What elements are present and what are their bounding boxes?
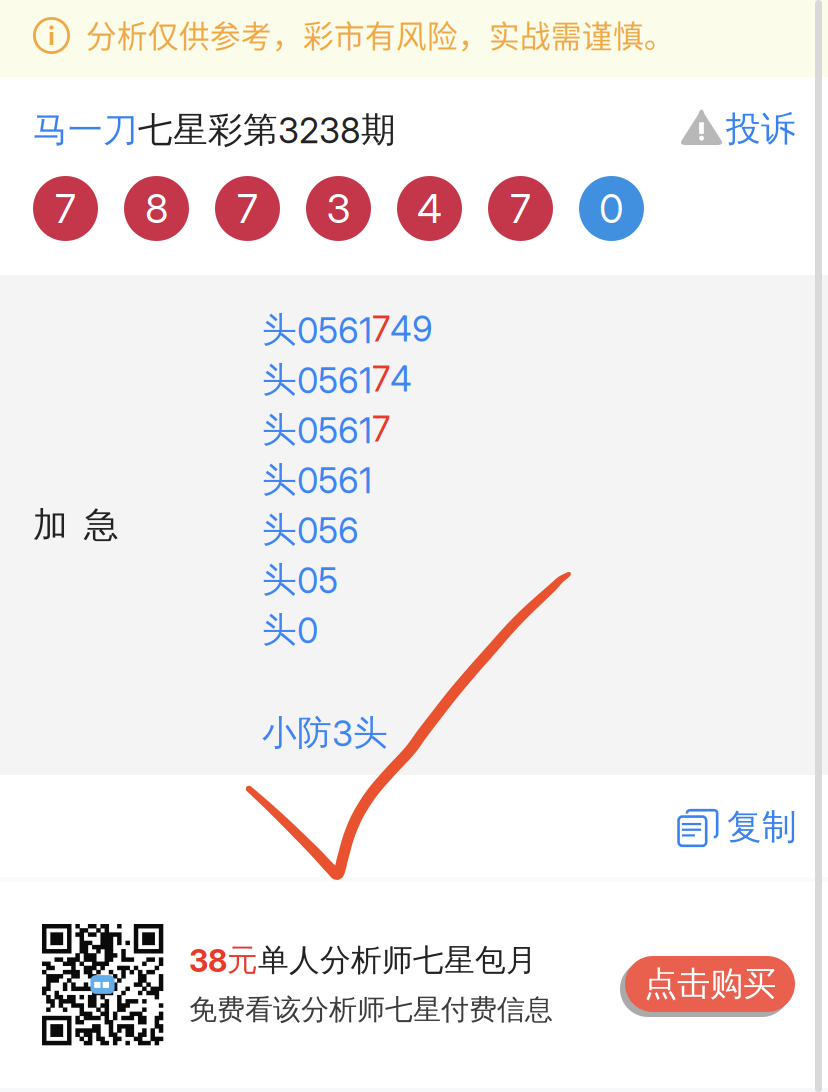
- staticText: 0: [599, 184, 624, 233]
- staticText: 49: [390, 308, 433, 350]
- staticText: 头0561: [262, 458, 372, 502]
- button[interactable]: 点击购买: [617, 953, 793, 1015]
- staticText: 7: [237, 184, 258, 233]
- staticText: 马一刀: [33, 108, 138, 152]
- staticText: 头056: [262, 508, 359, 552]
- staticText: 急: [84, 503, 119, 547]
- staticText: 4: [390, 358, 412, 400]
- staticText: 3: [326, 184, 350, 233]
- staticText: 复制: [727, 805, 797, 849]
- staticText: 小防3头: [262, 711, 388, 755]
- staticText: 头0: [262, 608, 318, 652]
- staticText: 7: [55, 184, 76, 233]
- staticText: 分析仅供参考，彩市有风险，实战需谨慎。: [86, 12, 675, 56]
- staticText: 头0561: [262, 358, 372, 402]
- staticText: 38元: [189, 941, 258, 980]
- staticText: 4: [417, 184, 442, 233]
- staticText: 投诉: [726, 107, 796, 151]
- staticText: 头05: [262, 558, 338, 602]
- staticText: 7: [510, 184, 531, 233]
- staticText: 7: [372, 308, 390, 350]
- staticText: 头0561: [262, 308, 372, 352]
- button[interactable]: 投诉: [672, 100, 800, 152]
- staticText: 7: [372, 358, 390, 400]
- staticText: 七星彩第3238期: [138, 108, 396, 152]
- staticText: 免费看该分析师七星付费信息: [189, 992, 553, 1027]
- staticText: 头0561: [262, 408, 372, 452]
- button[interactable]: 复制: [676, 802, 797, 852]
- staticText: 8: [145, 184, 168, 233]
- staticText: 加: [33, 503, 68, 547]
- staticText: 7: [372, 408, 390, 450]
- staticText: 单人分析师七星包月: [258, 941, 537, 980]
- staticText: 点击购买: [644, 963, 776, 1005]
